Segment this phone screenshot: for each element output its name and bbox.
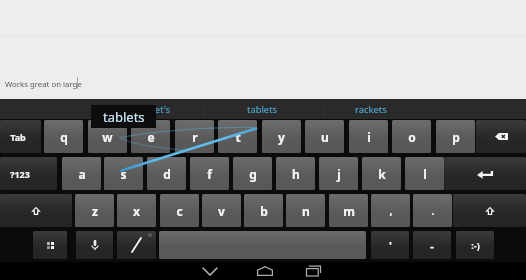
staticText: y	[278, 129, 285, 145]
button[interactable]: Voice input	[76, 231, 113, 259]
staticText: rackets	[355, 103, 387, 116]
button[interactable]: j	[319, 157, 358, 190]
button[interactable]: y	[262, 120, 301, 153]
staticText: _	[443, 232, 447, 242]
staticText: q	[60, 129, 68, 145]
staticText: u	[321, 129, 329, 145]
button[interactable]: a	[62, 157, 101, 190]
button[interactable]: s	[104, 157, 143, 190]
staticText: n	[302, 203, 310, 219]
staticText: tablet's	[138, 103, 171, 116]
staticText: p	[452, 129, 460, 145]
button[interactable]: _	[413, 231, 451, 259]
button[interactable]: z	[75, 194, 114, 227]
button[interactable]: u	[305, 120, 344, 153]
button[interactable]: Enter	[444, 157, 526, 190]
button[interactable]: e	[131, 120, 170, 153]
staticText: j	[337, 166, 341, 182]
button[interactable]: Hide keyboard	[195, 262, 225, 280]
button[interactable]: h	[276, 157, 315, 190]
button[interactable]: o	[392, 120, 431, 153]
button[interactable]: l	[405, 157, 444, 190]
button[interactable]: v	[202, 194, 241, 227]
button[interactable]: Switch keyboard	[33, 231, 67, 259]
button[interactable]: "	[371, 231, 409, 259]
button[interactable]: Space	[159, 231, 366, 259]
staticText: "	[402, 232, 405, 242]
staticText: !	[404, 195, 406, 205]
staticText: '	[389, 238, 392, 253]
staticText: .	[431, 203, 435, 218]
staticText: k	[378, 166, 386, 182]
button[interactable]: b	[244, 194, 283, 227]
staticText: b	[260, 203, 268, 219]
staticText: r	[192, 129, 198, 145]
button[interactable]: Shift	[453, 194, 526, 227]
staticText: v	[218, 203, 225, 219]
button[interactable]: Tab	[0, 120, 41, 153]
staticText: ,	[389, 203, 393, 218]
button[interactable]: rackets	[317, 99, 425, 119]
staticText: m	[343, 203, 355, 219]
staticText: x	[133, 203, 140, 219]
staticText: z	[92, 203, 98, 219]
button[interactable]: g	[233, 157, 272, 190]
staticText: Tab	[10, 131, 26, 143]
button[interactable]: ?	[413, 194, 452, 227]
button[interactable]: w	[88, 120, 127, 153]
button[interactable]: tablet's	[100, 99, 208, 119]
button[interactable]: m	[329, 194, 368, 227]
staticText: g	[249, 166, 257, 182]
staticText: :-)	[471, 239, 480, 251]
button[interactable]: f	[190, 157, 229, 190]
button[interactable]: q	[44, 120, 83, 153]
button[interactable]: Recents	[298, 262, 328, 280]
staticText: h	[292, 166, 300, 182]
staticText: s	[120, 166, 127, 182]
button[interactable]: Home	[250, 262, 280, 280]
staticText: Works great on large	[5, 79, 82, 90]
staticText: a	[78, 166, 86, 182]
button[interactable]: k	[362, 157, 401, 190]
staticText: f	[207, 166, 212, 182]
button[interactable]: x	[117, 194, 156, 227]
staticText: -	[430, 238, 434, 253]
staticText: l	[423, 166, 427, 182]
button[interactable]: Shift	[0, 194, 72, 227]
staticText: tablets	[103, 108, 145, 126]
button[interactable]: Backspace	[476, 120, 526, 153]
staticText: o	[408, 129, 416, 145]
button[interactable]: Slash	[117, 231, 156, 259]
button[interactable]: t	[218, 120, 257, 153]
button[interactable]: i	[349, 120, 388, 153]
button[interactable]: ?123	[0, 157, 57, 190]
button[interactable]: d	[147, 157, 186, 190]
button[interactable]: tablets	[208, 99, 316, 119]
staticText: d	[163, 166, 171, 182]
staticText: ?123	[10, 168, 30, 180]
button[interactable]: tablets	[91, 105, 156, 128]
button[interactable]: c	[160, 194, 199, 227]
staticText: t	[235, 129, 241, 145]
staticText: w	[102, 129, 113, 145]
button[interactable]: !	[371, 194, 410, 227]
staticText: tablets	[247, 103, 278, 116]
staticText: e	[147, 129, 155, 145]
button[interactable]: n	[286, 194, 325, 227]
button[interactable]: :-)	[456, 231, 494, 259]
button[interactable]: r	[175, 120, 214, 153]
staticText: c	[176, 203, 183, 219]
button[interactable]: p	[436, 120, 475, 153]
staticText: i	[367, 129, 371, 145]
staticText: ?	[444, 195, 448, 205]
